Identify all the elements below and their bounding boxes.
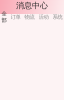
staticText: 系统 — [52, 14, 62, 20]
staticText: 消息中心 — [16, 1, 48, 10]
staticText: 全部 — [1, 10, 6, 23]
staticText: 物流 — [24, 14, 34, 20]
staticText: 订单 — [10, 14, 20, 20]
staticText: 活动 — [38, 14, 48, 20]
